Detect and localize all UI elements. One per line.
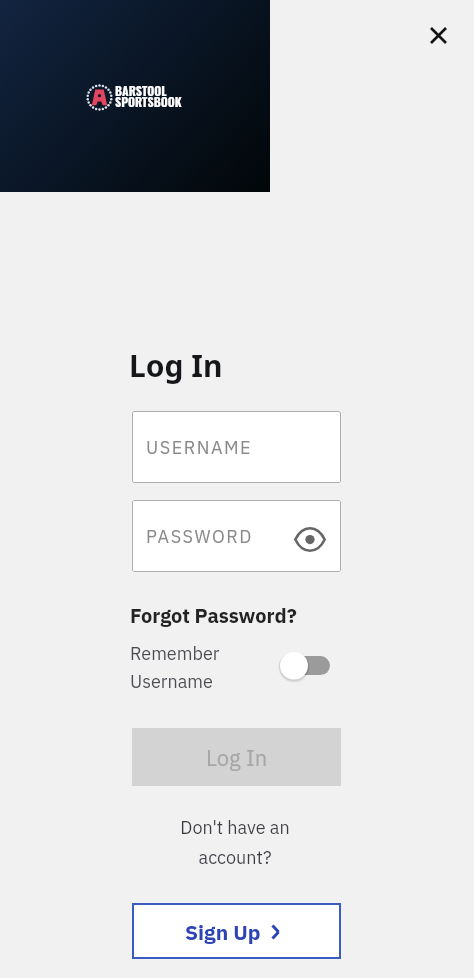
button[interactable]: Remember username toggle — [274, 645, 336, 685]
staticText: Remember Username — [130, 642, 220, 693]
staticText: SPORTSBOOK — [115, 93, 182, 111]
staticText: Log In — [206, 743, 268, 772]
staticText: USERNAME — [146, 436, 253, 459]
button[interactable]: Close — [414, 11, 462, 59]
button[interactable]: Log In — [132, 728, 341, 786]
staticText: Don't have an account? — [151, 816, 319, 869]
button[interactable]: Show password — [286, 515, 334, 563]
button[interactable]: Sign Up — [132, 903, 341, 959]
button[interactable]: PASSWORD — [132, 500, 341, 572]
button[interactable]: USERNAME — [132, 411, 341, 483]
staticText: Log In — [129, 345, 223, 386]
staticText: BARSTOOL — [115, 82, 167, 100]
button[interactable]: Forgot Password? — [130, 602, 297, 628]
staticText: Sign Up — [185, 918, 261, 945]
staticText: PASSWORD — [146, 525, 253, 548]
staticText: Forgot Password? — [130, 602, 297, 628]
